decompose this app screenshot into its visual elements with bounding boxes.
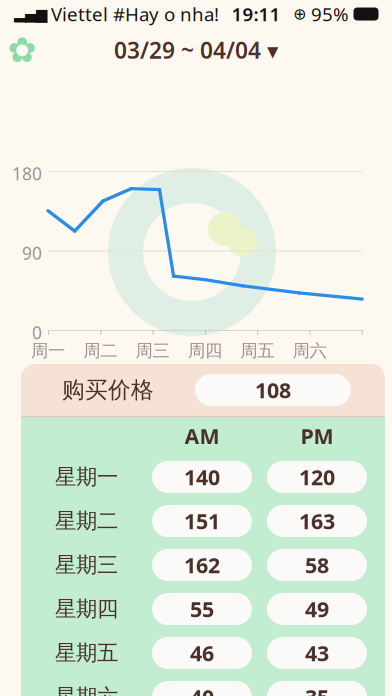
button[interactable]: 108 (195, 374, 351, 406)
staticText: 星期二 (55, 508, 118, 534)
button[interactable]: 162 (152, 549, 252, 581)
staticText: 星期一 (55, 464, 118, 490)
staticText: 163 (299, 507, 335, 535)
staticText: Viettel #Hay o nha! (51, 2, 219, 26)
staticText: 星期六 (55, 684, 118, 696)
staticText: 108 (255, 376, 291, 404)
staticText: PM (300, 422, 333, 450)
staticText: 星期三 (55, 552, 118, 578)
staticText: 星期四 (55, 596, 118, 622)
button[interactable]: 55 (152, 593, 252, 625)
staticText: 19:11 (231, 2, 280, 26)
staticText: 95% (311, 2, 349, 26)
staticText: ✿ (7, 30, 36, 70)
staticText: 周六 (292, 340, 326, 361)
staticText: 购买价格 (62, 376, 154, 404)
staticText: AM (184, 422, 219, 450)
button[interactable]: Settings (0, 28, 44, 72)
staticText: 周三 (136, 340, 170, 361)
staticText: 周二 (83, 340, 117, 361)
staticText: 49 (305, 595, 329, 623)
staticText: 35 (305, 683, 329, 696)
button[interactable]: 151 (152, 505, 252, 537)
staticText: 周五 (240, 340, 274, 361)
staticText: 周四 (188, 340, 222, 361)
staticText: 90 (22, 241, 42, 264)
button[interactable]: 35 (267, 681, 367, 696)
button[interactable]: 46 (152, 637, 252, 669)
staticText: 0 (32, 321, 42, 344)
button[interactable]: 40 (152, 681, 252, 696)
button[interactable]: 163 (267, 505, 367, 537)
staticText: 58 (305, 551, 329, 579)
staticText: 140 (184, 463, 220, 491)
staticText: ▂▄▆ (14, 6, 47, 22)
button[interactable]: 49 (267, 593, 367, 625)
button[interactable]: 120 (267, 461, 367, 493)
staticText: 180 (12, 162, 42, 185)
staticText: 43 (305, 639, 329, 667)
staticText: 120 (299, 463, 335, 491)
staticText: 46 (190, 639, 214, 667)
button[interactable]: 140 (152, 461, 252, 493)
staticText: 周一 (31, 340, 65, 361)
button[interactable]: 58 (267, 549, 367, 581)
staticText: 03/29 ~ 04/04 ▾ (114, 35, 278, 65)
staticText: 55 (190, 595, 214, 623)
button[interactable]: 03/29 ~ 04/04 ▾ (86, 30, 306, 70)
staticText: 40 (190, 683, 214, 696)
staticText: 162 (184, 551, 220, 579)
button[interactable]: 43 (267, 637, 367, 669)
staticText: 151 (184, 507, 220, 535)
staticText: ⊕ (293, 5, 306, 23)
staticText: 星期五 (55, 640, 118, 666)
